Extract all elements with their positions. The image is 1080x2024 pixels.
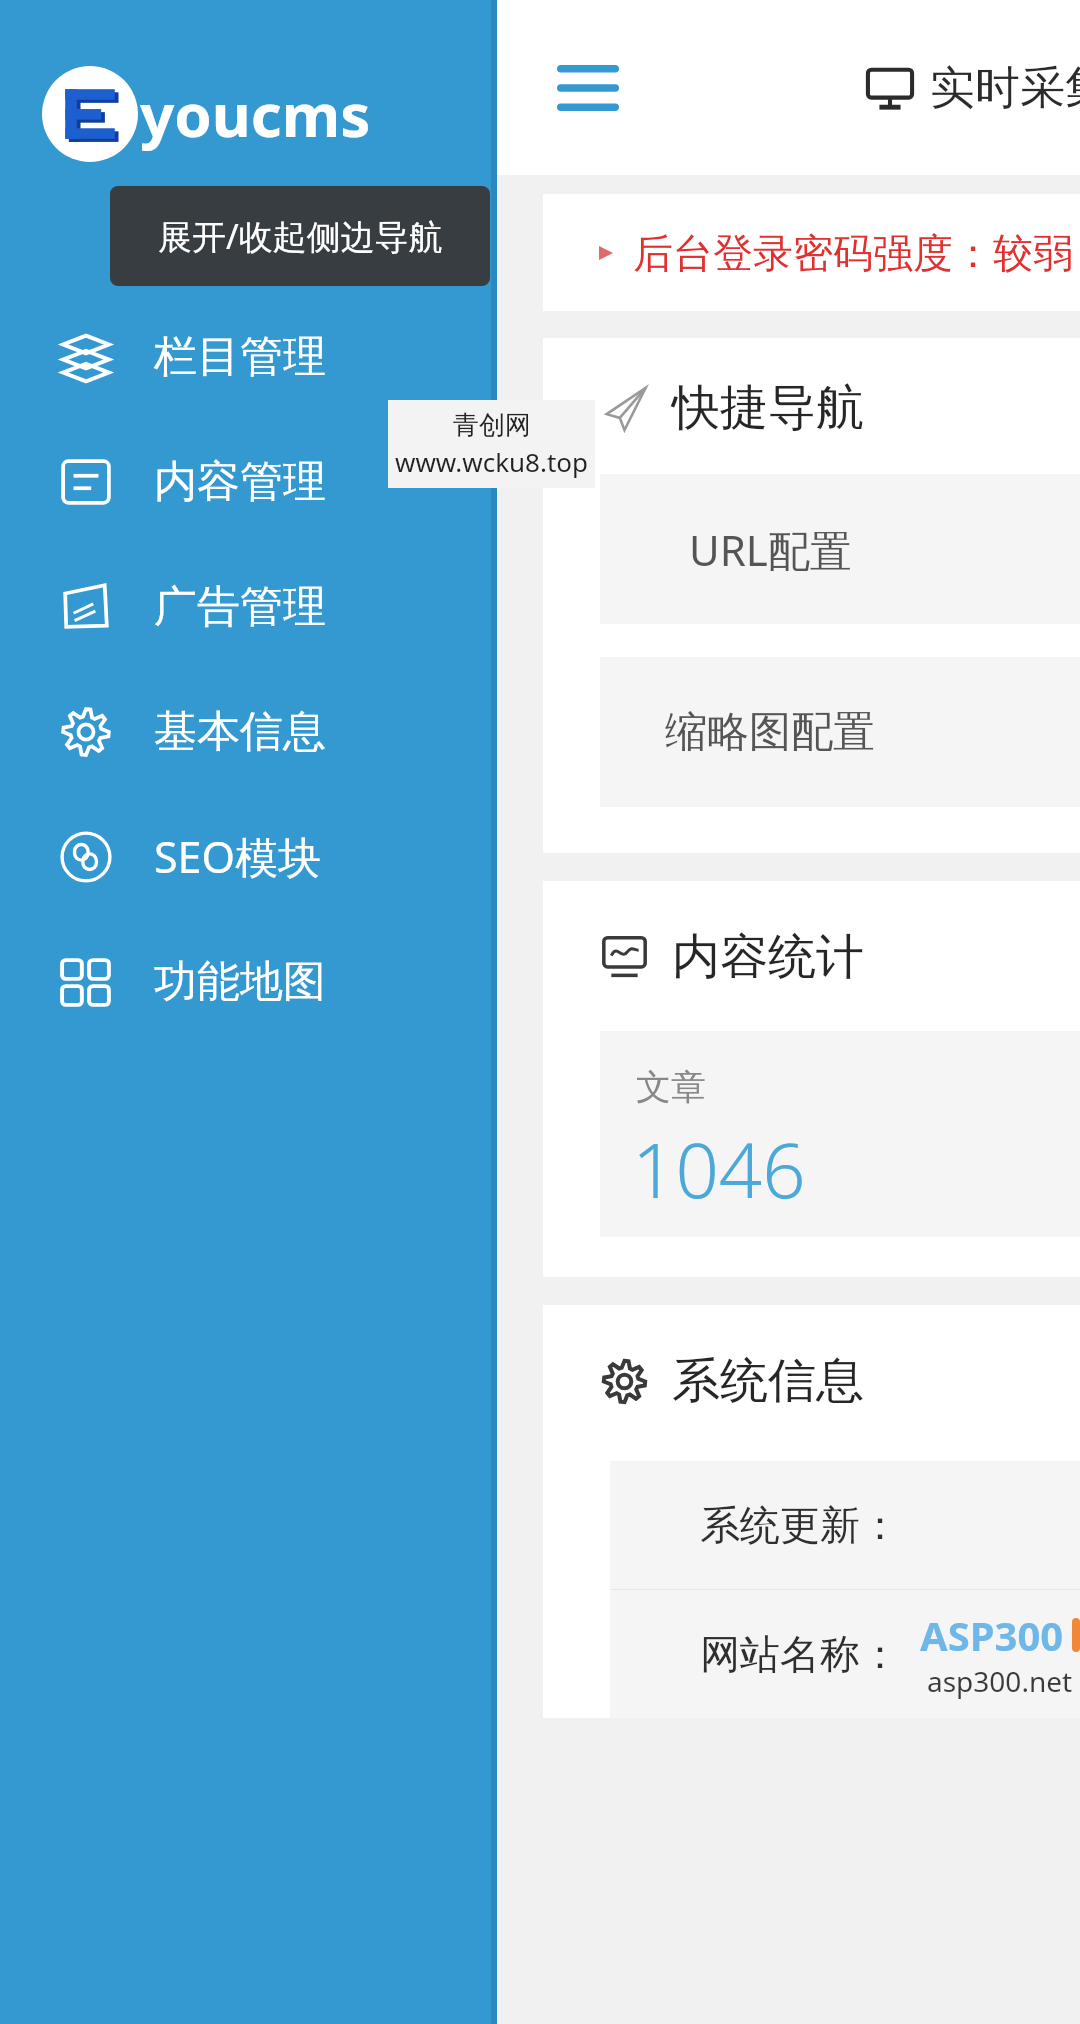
button[interactable]: SEO模块 bbox=[0, 794, 497, 919]
other: SEO模块 bbox=[60, 831, 112, 883]
button[interactable]: 实时采集 bbox=[866, 28, 1080, 148]
staticText: ASP300 bbox=[920, 1608, 1064, 1662]
other: 基本信息 bbox=[60, 706, 112, 758]
staticText: 功能地图 bbox=[154, 955, 326, 1009]
staticText: 基本信息 bbox=[154, 705, 326, 759]
button[interactable]: 展开/收起侧边导航 bbox=[545, 45, 631, 131]
staticText: youcms bbox=[140, 73, 371, 155]
button[interactable]: 内容管理 bbox=[0, 419, 497, 544]
staticText: www.wcku8.top bbox=[395, 444, 589, 479]
staticText: 内容管理 bbox=[154, 455, 326, 509]
staticText: 展开/收起侧边导航 bbox=[158, 213, 443, 259]
button[interactable]: 基本信息 bbox=[0, 669, 497, 794]
staticText: SEO模块 bbox=[154, 827, 322, 886]
other: 广告管理 bbox=[60, 581, 112, 633]
other: 实时采集 bbox=[866, 64, 914, 112]
button[interactable]: 广告管理 bbox=[0, 544, 497, 669]
staticText: 后台登录密码强度：较弱，容 bbox=[633, 228, 1080, 278]
staticText: 广告管理 bbox=[154, 580, 326, 634]
button[interactable]: 文章 bbox=[600, 1031, 1080, 1237]
staticText: 系统更新： bbox=[700, 1500, 900, 1550]
staticText: 快捷导航 bbox=[672, 378, 864, 438]
staticText: 1046 bbox=[632, 1117, 806, 1221]
staticText: 缩略图配置 bbox=[665, 706, 875, 759]
staticText: 栏目管理 bbox=[154, 330, 326, 384]
button[interactable]: 缩略图配置 bbox=[600, 657, 1080, 807]
button[interactable]: 栏目管理 bbox=[0, 294, 497, 419]
staticText: asp300.net bbox=[927, 1662, 1073, 1700]
staticText: 实时采集 bbox=[930, 60, 1080, 117]
staticText: 内容统计 bbox=[672, 927, 864, 987]
staticText: 青创网 bbox=[453, 409, 531, 442]
button[interactable]: youcms bbox=[0, 62, 497, 166]
other: 栏目管理 bbox=[60, 331, 112, 383]
other: 功能地图 bbox=[60, 956, 112, 1008]
other: 内容管理 bbox=[60, 456, 112, 508]
staticText: 文章 bbox=[636, 1065, 706, 1109]
staticText: URL配置 bbox=[689, 521, 852, 578]
staticText: 系统信息 bbox=[672, 1351, 864, 1411]
button[interactable]: 展开/收起侧边导航 bbox=[110, 186, 490, 286]
button[interactable]: 功能地图 bbox=[0, 919, 497, 1044]
staticText: 网站名称： bbox=[700, 1629, 900, 1679]
button[interactable]: URL配置 bbox=[600, 474, 1080, 624]
